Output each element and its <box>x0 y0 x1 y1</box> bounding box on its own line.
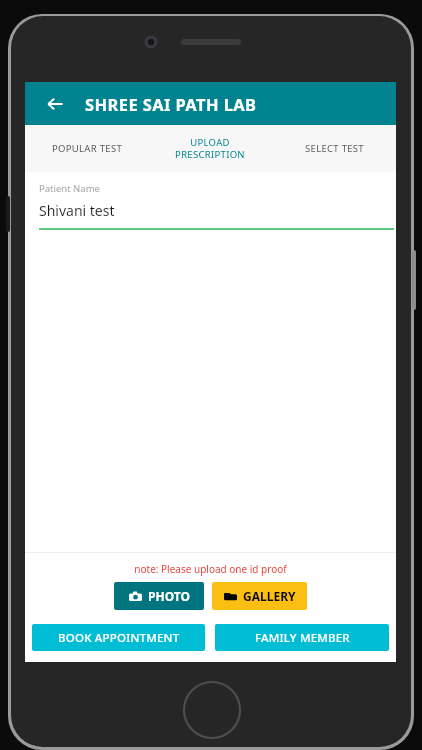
button[interactable]: POPULAR TEST <box>25 125 148 172</box>
staticText: SHREE SAI PATH LAB <box>85 93 257 115</box>
staticText: FAMILY MEMBER <box>255 630 350 646</box>
button[interactable]: SELECT TEST <box>272 125 396 172</box>
staticText: POPULAR TEST <box>52 142 122 155</box>
staticText: PHOTO <box>148 588 190 604</box>
button[interactable]: PHOTO <box>114 582 204 610</box>
staticText: SELECT TEST <box>305 142 364 155</box>
staticText: GALLERY <box>243 588 296 604</box>
staticText: UPLOAD PRESCRIPTION <box>175 136 245 161</box>
staticText: BOOK APPOINTMENT <box>58 630 180 646</box>
staticText: Patient Name <box>39 182 100 195</box>
staticText: Shivani test <box>39 201 115 220</box>
button[interactable]: BOOK APPOINTMENT <box>32 624 205 651</box>
button[interactable]: UPLOAD PRESCRIPTION <box>148 125 272 172</box>
staticText: note: Please upload one id proof <box>25 562 396 576</box>
button[interactable]: GALLERY <box>212 582 307 610</box>
button[interactable]: FAMILY MEMBER <box>215 624 389 651</box>
button[interactable]: Back <box>39 88 71 120</box>
button[interactable]: Shivani test <box>39 201 394 220</box>
